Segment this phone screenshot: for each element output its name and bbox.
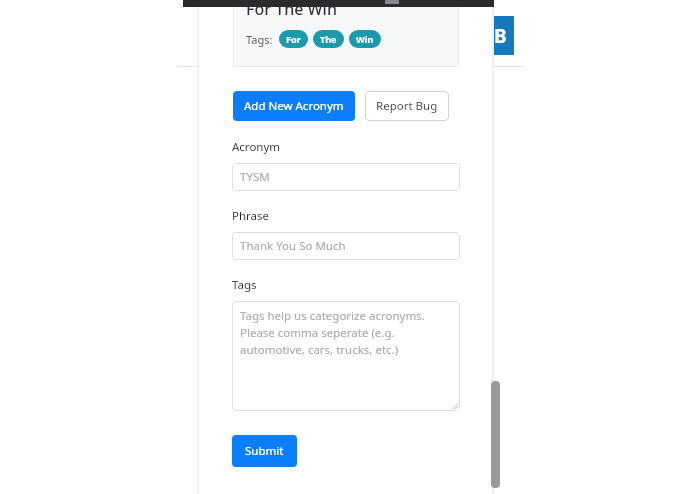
button[interactable]: Report Bug [365,91,449,121]
staticText: TYSM [240,169,270,185]
staticText: The [320,33,337,45]
button[interactable]: Win [349,30,381,48]
button[interactable]: Add New Acronym [233,91,355,121]
staticText: Add New Acronym [244,98,344,114]
button[interactable]: For The Win [233,0,459,67]
staticText: Tags: [246,32,273,47]
staticText: Acronym [232,139,281,155]
button[interactable]: Submit [232,435,297,467]
button[interactable]: Tags help us categorize acronyms. Please… [232,301,460,411]
staticText: For The Win [246,0,337,20]
staticText: Tags [232,277,257,293]
staticText: Report Bug [376,98,438,114]
staticText: Thank You So Much [240,238,346,254]
staticText: Phrase [232,208,270,224]
button[interactable]: Thank You So Much [232,232,460,260]
staticText: Win [356,33,374,45]
staticText: Tags help us categorize acronyms. Please… [240,308,450,358]
other: Scroll [491,381,500,488]
button[interactable]: TYSM [232,163,460,191]
staticText: B [494,23,507,49]
staticText: Submit [245,443,284,459]
button[interactable]: The [313,30,344,48]
button[interactable]: For [279,30,308,48]
staticText: For [286,33,301,45]
